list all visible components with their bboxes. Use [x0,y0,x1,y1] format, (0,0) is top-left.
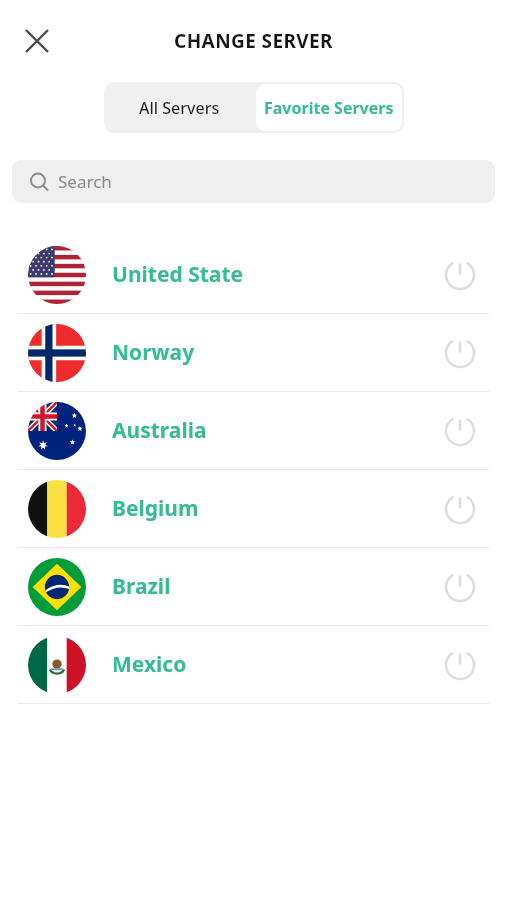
button[interactable]: All Servers [104,82,254,133]
staticText: Brazil [112,572,443,601]
button[interactable]: Brazil [0,548,507,626]
button[interactable]: Search [12,160,495,203]
staticText: All Servers [139,97,220,119]
staticText: United State [112,260,443,289]
staticText: Belgium [112,494,443,523]
staticText: Australia [112,416,443,445]
button[interactable]: Close [14,18,60,64]
button[interactable]: Favorite Servers [256,84,402,131]
button[interactable]: Belgium [0,470,507,548]
button[interactable]: Australia [0,392,507,470]
other: Connect to Norway [443,336,477,370]
staticText: Favorite Servers [264,97,394,119]
staticText: CHANGE SERVER [174,28,333,54]
staticText: Mexico [112,650,443,679]
staticText: Search [58,170,112,193]
button[interactable]: Mexico [0,626,507,704]
other: Connect to Australia [443,414,477,448]
other: Connect to Brazil [443,570,477,604]
button[interactable]: United State [0,236,507,314]
button[interactable]: Norway [0,314,507,392]
other: Connect to Mexico [443,648,477,682]
other: Connect to United State [443,258,477,292]
staticText: Norway [112,338,443,367]
other: Connect to Belgium [443,492,477,526]
